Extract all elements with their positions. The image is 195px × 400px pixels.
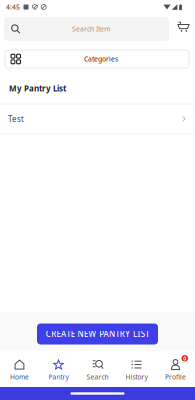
button[interactable]: Search [78, 351, 117, 387]
button[interactable]: Home [0, 351, 39, 387]
staticText: Search [86, 373, 108, 381]
button[interactable]: 0 [156, 351, 195, 387]
button[interactable]: Test [0, 104, 195, 133]
staticText: CREATE NEW PANTRY LIST [46, 329, 149, 339]
staticText: Categories [84, 55, 118, 63]
button[interactable]: History [117, 351, 156, 387]
staticText: 4:45 [6, 3, 20, 11]
staticText: History [125, 373, 147, 381]
staticText: Test [8, 114, 24, 124]
staticText: My Pantry List [9, 83, 66, 94]
staticText: 0 [183, 355, 186, 362]
staticText: Pantry [48, 373, 68, 381]
staticText: Profile [165, 373, 186, 381]
button[interactable]: CREATE NEW PANTRY LIST [37, 323, 158, 344]
button[interactable]: Categories [5, 50, 189, 68]
button[interactable]: Cart [169, 17, 194, 41]
staticText: Home [10, 373, 29, 381]
staticText: Search Item [72, 25, 110, 33]
button[interactable]: Pantry [39, 351, 78, 387]
